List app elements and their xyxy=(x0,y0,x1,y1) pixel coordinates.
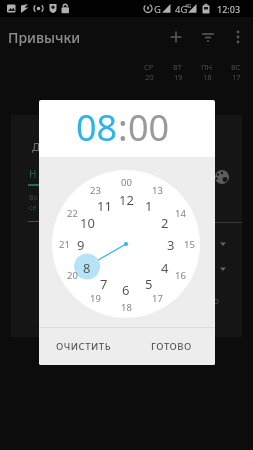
staticText: 12:03 xyxy=(217,3,241,14)
staticText: 00 xyxy=(121,176,132,189)
staticText: 18 xyxy=(203,72,212,82)
button[interactable]: ГОТОВО xyxy=(127,328,215,365)
staticText: 08 xyxy=(76,103,118,152)
staticText: 12 xyxy=(119,191,134,207)
staticText: 4G xyxy=(175,3,188,14)
staticText: 9 xyxy=(77,236,85,252)
staticText: 00 xyxy=(128,103,170,152)
staticText: 4G xyxy=(185,3,192,10)
staticText: СР xyxy=(144,62,154,72)
staticText: 21 xyxy=(59,238,70,251)
staticText: 23 xyxy=(90,184,101,197)
staticText: ОЧИСТИТЬ xyxy=(56,340,111,353)
staticText: 15 xyxy=(184,238,195,251)
staticText: 16 xyxy=(175,269,186,282)
staticText: 6 xyxy=(122,281,130,297)
staticText: G xyxy=(154,3,161,14)
staticText: ГОТОВО xyxy=(151,340,192,353)
staticText: Во xyxy=(29,193,38,203)
staticText: 7 xyxy=(100,275,108,291)
staticText: ВТ xyxy=(173,62,183,72)
staticText: 11 xyxy=(97,197,112,213)
staticText: 1 xyxy=(145,197,153,213)
staticText: 8 xyxy=(83,259,91,275)
staticText: 20 xyxy=(145,72,154,82)
staticText: Н xyxy=(29,167,37,180)
button[interactable] xyxy=(196,27,220,47)
staticText: Ь xyxy=(213,293,220,306)
staticText: 4 xyxy=(161,259,169,275)
staticText: 19 xyxy=(90,292,101,305)
staticText: ВС xyxy=(231,62,241,72)
button[interactable]: ОЧИСТИТЬ xyxy=(39,328,127,365)
staticText: 17 xyxy=(232,72,241,82)
staticText: 17 xyxy=(152,292,163,305)
staticText: 5 xyxy=(145,275,153,291)
staticText: 19 xyxy=(174,72,183,82)
staticText: 22 xyxy=(67,207,78,220)
staticText: 18 xyxy=(121,301,132,314)
staticText: : xyxy=(118,103,128,152)
staticText: 10 xyxy=(80,214,95,230)
button[interactable] xyxy=(228,27,248,47)
staticText: ПН xyxy=(201,62,213,72)
staticText: 13 xyxy=(152,184,163,197)
staticText: 2 xyxy=(161,214,169,230)
button[interactable] xyxy=(164,27,188,47)
staticText: 20 xyxy=(67,269,78,282)
staticText: 3 xyxy=(167,236,175,252)
staticText: До xyxy=(32,139,47,153)
staticText: Привычки xyxy=(8,28,81,47)
staticText: се xyxy=(29,203,37,213)
staticText: 14 xyxy=(175,207,186,220)
